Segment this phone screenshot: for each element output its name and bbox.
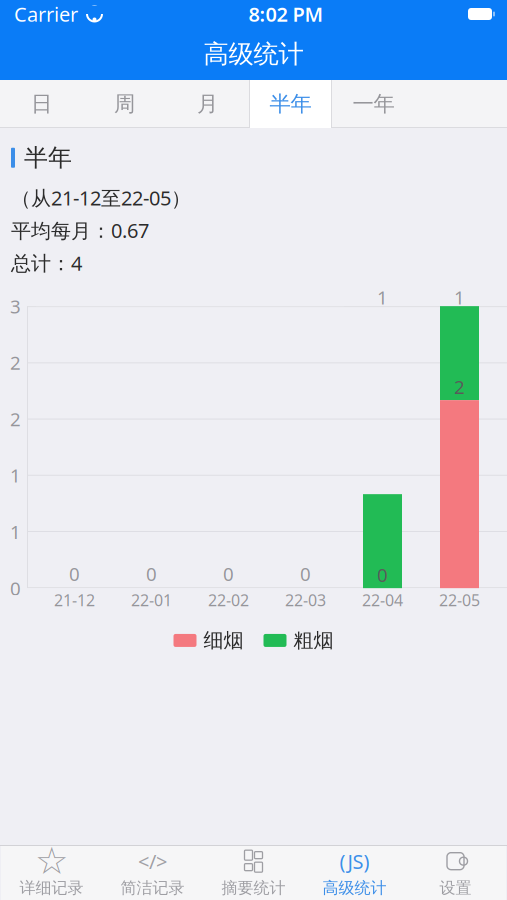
staticText: 总计：4 [11,250,82,276]
button[interactable]: 日 [0,80,83,128]
staticText: 平均每月：0.67 [11,217,149,244]
staticText: 1 [10,463,21,488]
button[interactable]: 设置 [405,846,506,900]
staticText: (JS) [339,848,369,874]
staticText: 0 [300,561,311,586]
staticText: 设置 [439,878,471,898]
staticText: 详细记录 [19,878,83,898]
staticText: 高级统计 [322,878,386,898]
staticText: （从21-12至22-05） [11,184,191,211]
staticText: 2 [10,350,21,375]
staticText: 22-01 [131,589,172,611]
staticText: 0 [69,561,80,586]
staticText: 半年 [269,91,311,117]
staticText: 一年 [352,91,394,117]
button[interactable]: 一年 [332,80,415,128]
staticText: 周 [114,91,135,117]
staticText: 22-02 [208,589,249,611]
staticText: 摘要统计 [221,878,285,898]
staticText: 0 [223,561,234,586]
staticText: ☆ [35,840,68,882]
button[interactable]: 月 [166,80,249,128]
staticText: </> [138,848,167,874]
staticText: 21-12 [54,589,95,611]
button[interactable]: </> [102,846,203,900]
staticText: 2 [454,374,465,399]
staticText: Carrier [14,1,78,27]
button[interactable]: ☆ [1,846,102,900]
staticText: 月 [197,91,218,117]
staticText: 8:02 PM [248,1,323,27]
staticText: 简洁记录 [120,878,184,898]
staticText: 3 [10,294,21,319]
staticText: 0 [146,561,157,586]
button[interactable]: 半年 [249,80,332,128]
button[interactable]: 周 [83,80,166,128]
staticText: 0 [10,576,21,601]
staticText: 高级统计 [203,38,303,69]
staticText: 0 [377,562,388,587]
staticText: 日 [31,91,52,117]
staticText: 半年 [24,143,72,172]
button[interactable]: (JS) [304,846,405,900]
button[interactable]: 摘要统计 [203,846,304,900]
staticText: 细烟 [203,628,243,653]
staticText: 1 [454,285,465,310]
staticText: 22-05 [439,589,480,611]
staticText: 粗烟 [293,628,333,653]
staticText: 2 [10,407,21,431]
staticText: 22-04 [362,589,403,611]
staticText: 1 [10,519,21,544]
staticText: 1 [377,285,388,310]
staticText: 22-03 [285,589,326,611]
